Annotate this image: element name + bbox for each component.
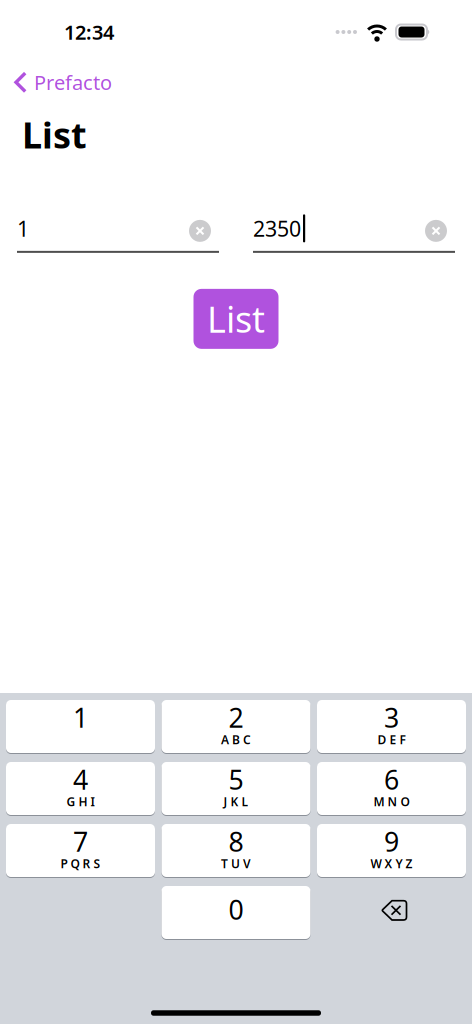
staticText: 12:34 — [64, 19, 114, 45]
staticText: 1 — [73, 700, 88, 735]
button[interactable]: Prefacto — [0, 64, 112, 101]
staticText: J K L — [223, 793, 248, 809]
staticText: P Q R S — [60, 855, 100, 871]
staticText: 2350 — [253, 214, 301, 242]
staticText: 3 — [384, 700, 399, 735]
button[interactable]: Delete — [356, 890, 426, 934]
button[interactable]: 1 — [6, 699, 155, 754]
staticText: 8 — [228, 824, 243, 859]
staticText: List — [22, 111, 87, 158]
button[interactable]: 9 — [317, 823, 466, 878]
button[interactable]: Clear text — [425, 217, 455, 239]
staticText: D E F — [377, 731, 405, 747]
staticText: 7 — [73, 824, 88, 859]
staticText: T U V — [221, 855, 251, 871]
staticText: 2 — [228, 700, 243, 735]
staticText: A B C — [221, 731, 251, 747]
button[interactable]: List — [193, 289, 278, 349]
button[interactable]: 8 — [161, 823, 310, 878]
staticText: 1 — [17, 214, 29, 242]
staticText: Prefacto — [34, 69, 112, 96]
staticText: M N O — [373, 793, 409, 809]
staticText: 9 — [384, 824, 399, 859]
button[interactable]: 4 — [6, 761, 155, 816]
button[interactable]: 5 — [161, 761, 310, 816]
button[interactable]: Clear text — [189, 217, 219, 239]
staticText: 5 — [228, 762, 243, 797]
staticText: W X Y Z — [370, 855, 412, 871]
staticText: 6 — [384, 762, 399, 797]
button[interactable]: 7 — [6, 823, 155, 878]
staticText: G H I — [66, 793, 94, 809]
button[interactable]: 0 — [161, 885, 310, 940]
staticText: 0 — [228, 892, 243, 927]
button[interactable]: 6 — [317, 761, 466, 816]
staticText: 4 — [73, 762, 88, 797]
button[interactable]: 3 — [317, 699, 466, 754]
staticText: List — [207, 295, 265, 343]
button[interactable]: 2 — [161, 699, 310, 754]
